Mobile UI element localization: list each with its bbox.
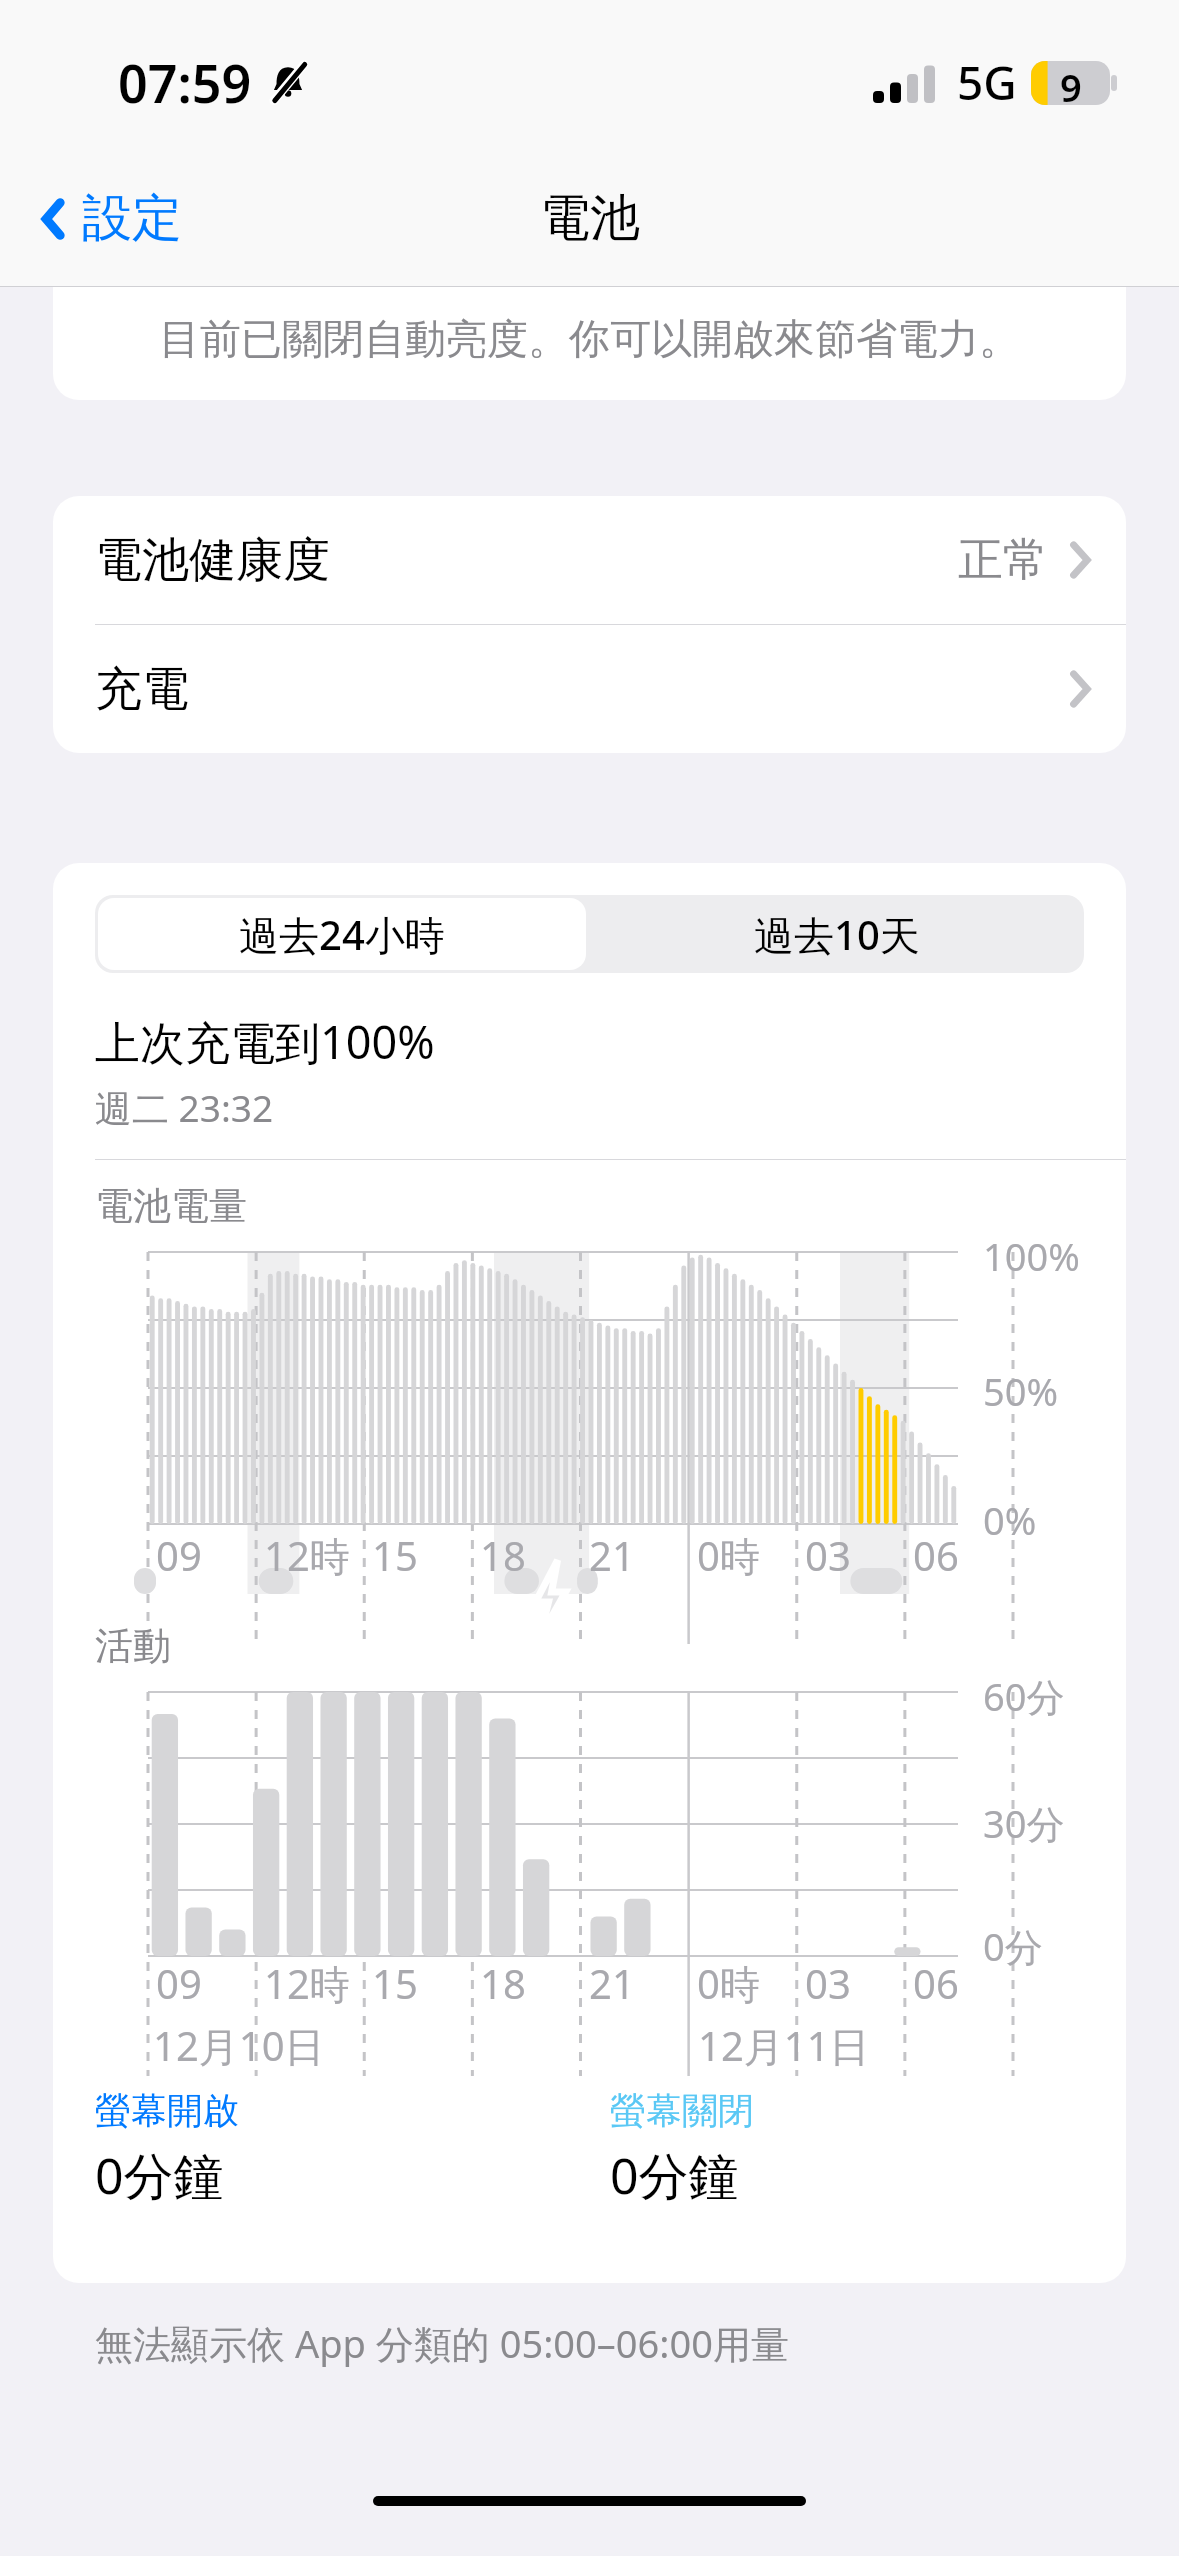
staticText: 週二 23:32 <box>95 1082 274 1133</box>
staticText: 正常 <box>958 532 1048 589</box>
staticText: 06 <box>913 1956 959 2010</box>
staticText: 21 <box>589 1956 635 2010</box>
staticText: 15 <box>372 1956 418 2010</box>
staticText: 活動 <box>95 1622 171 1670</box>
staticText: 過去10天 <box>754 907 920 962</box>
staticText: 0分鐘 <box>95 2141 224 2209</box>
staticText: 目前已關閉自動亮度。你可以開啟來節省電力。 <box>159 314 1020 366</box>
button[interactable]: 過去10天 <box>589 895 1084 973</box>
staticText: 12時 <box>264 1956 350 2011</box>
staticText: 無法顯示依 App 分類的 05:00–06:00用量 <box>95 2317 1179 2369</box>
staticText: 5G <box>957 51 1017 114</box>
staticText: 0分 <box>983 1920 1043 1972</box>
staticText: 21 <box>589 1528 635 1582</box>
staticText: 電池電量 <box>95 1182 247 1230</box>
staticText: 0時 <box>697 1956 760 2011</box>
staticText: 9 <box>1060 61 1082 105</box>
staticText: 07:59 <box>118 47 252 118</box>
staticText: 螢幕關閉 <box>610 2088 754 2133</box>
staticText: 18 <box>480 1956 526 2010</box>
staticText: 30分 <box>983 1797 1065 1849</box>
staticText: 過去24小時 <box>239 907 445 962</box>
staticText: 12月10日 <box>153 2018 325 2070</box>
staticText: 電池 <box>540 187 640 250</box>
staticText: 15 <box>372 1528 418 1582</box>
staticText: 充電 <box>95 660 189 719</box>
staticText: 60分 <box>983 1670 1065 1722</box>
staticText: 0時 <box>697 1528 760 1583</box>
staticText: 03 <box>805 1528 851 1582</box>
staticText: 設定 <box>82 187 182 250</box>
staticText: 0% <box>983 1494 1037 1546</box>
staticText: 0分鐘 <box>610 2141 739 2209</box>
staticText: 上次充電到100% <box>95 1011 435 1072</box>
button[interactable]: 充電 <box>53 625 1126 753</box>
button[interactable]: 電池健康度 <box>53 496 1126 625</box>
staticText: 12月11日 <box>698 2018 870 2070</box>
button[interactable]: 過去24小時 <box>98 898 586 970</box>
staticText: 09 <box>156 1528 202 1582</box>
staticText: 50% <box>983 1365 1059 1417</box>
staticText: 09 <box>156 1956 202 2010</box>
staticText: 12時 <box>264 1528 350 1583</box>
staticText: 電池健康度 <box>95 531 330 590</box>
staticText: 03 <box>805 1956 851 2010</box>
button[interactable]: 設定 <box>34 177 188 260</box>
staticText: 06 <box>913 1528 959 1582</box>
staticText: 100% <box>983 1230 1080 1282</box>
staticText: 螢幕開啟 <box>95 2088 239 2133</box>
staticText: 18 <box>480 1528 526 1582</box>
